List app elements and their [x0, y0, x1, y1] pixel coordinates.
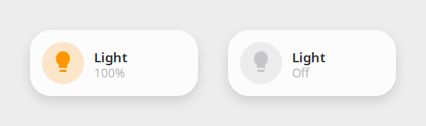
staticText: Light: [292, 48, 325, 66]
button[interactable]: Light: [30, 30, 198, 96]
staticText: Light: [94, 48, 127, 66]
button[interactable]: Light: [228, 30, 396, 96]
staticText: Off: [292, 65, 309, 81]
staticText: 100%: [94, 65, 125, 81]
